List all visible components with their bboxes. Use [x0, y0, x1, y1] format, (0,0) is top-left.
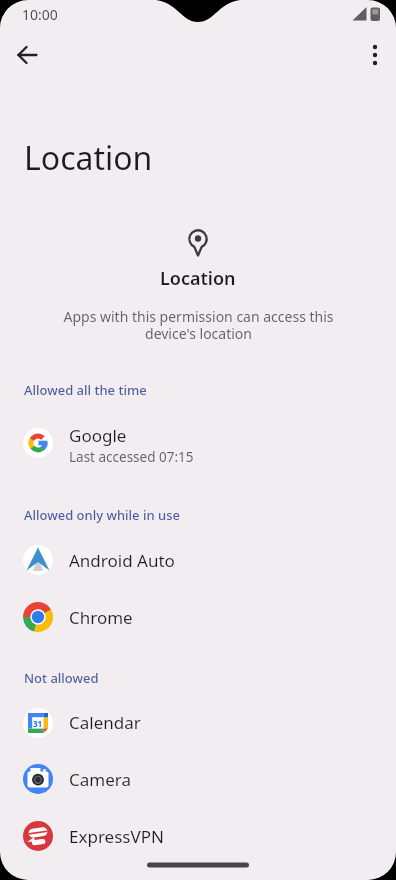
- staticText: 31: [33, 718, 43, 729]
- staticText: Camera: [69, 768, 131, 791]
- staticText: Android Auto: [69, 549, 175, 572]
- button[interactable]: [0, 532, 396, 589]
- staticText: Location: [160, 266, 236, 291]
- button[interactable]: [3, 31, 51, 79]
- button[interactable]: [0, 415, 396, 472]
- staticText: Allowed only while in use: [24, 506, 180, 524]
- staticText: ExpressVPN: [69, 825, 164, 848]
- staticText: Chrome: [69, 606, 133, 629]
- staticText: Location: [24, 136, 153, 180]
- staticText: Apps with this permission can access thi…: [63, 307, 334, 343]
- staticText: Not allowed: [24, 669, 99, 687]
- staticText: Allowed all the time: [24, 381, 147, 399]
- staticText: 10:00: [22, 5, 58, 24]
- button[interactable]: [0, 589, 396, 646]
- staticText: Calendar: [69, 711, 141, 734]
- button[interactable]: [0, 808, 396, 865]
- button[interactable]: [0, 751, 396, 808]
- button[interactable]: [351, 31, 396, 79]
- staticText: Last accessed 07:15: [69, 448, 194, 466]
- staticText: Google: [69, 424, 127, 447]
- button[interactable]: [0, 694, 396, 751]
